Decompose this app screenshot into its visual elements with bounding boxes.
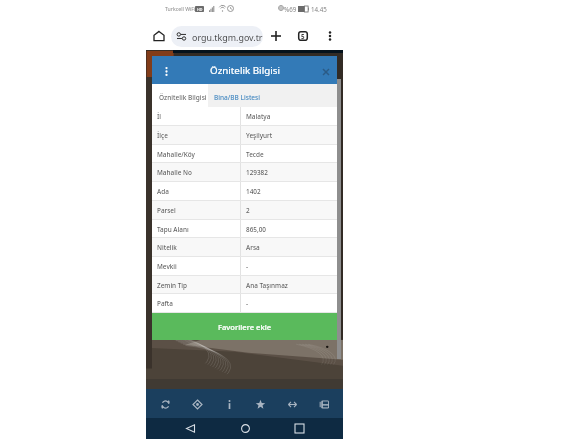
staticText: Nitelik xyxy=(157,243,177,252)
button[interactable]: Home xyxy=(149,26,169,46)
staticText: HD xyxy=(197,7,203,12)
button[interactable]: Bina/BB Listesi xyxy=(208,84,260,107)
staticText: Tecde xyxy=(246,150,264,159)
staticText: Ada xyxy=(157,187,169,196)
staticText: 2 xyxy=(246,206,250,215)
button[interactable]: Back xyxy=(179,418,201,439)
button[interactable]: Favorilere ekle xyxy=(152,313,337,340)
button[interactable]: Mahalle/Köy xyxy=(152,145,337,163)
button[interactable]: İl xyxy=(152,107,337,126)
button[interactable]: İlçe xyxy=(152,126,337,145)
staticText: İl xyxy=(157,112,161,121)
button[interactable]: Locate xyxy=(184,391,210,417)
staticText: Mahalle No xyxy=(157,168,192,177)
staticText: Pafta xyxy=(157,299,173,308)
button[interactable]: Measure xyxy=(279,391,305,417)
button[interactable]: Recents xyxy=(288,418,310,439)
button[interactable]: Mevkii xyxy=(152,257,337,276)
staticText: 14.45 xyxy=(311,5,327,13)
button[interactable]: Menu xyxy=(159,64,173,78)
button[interactable]: Info xyxy=(216,391,242,417)
button[interactable]: Favorite xyxy=(247,391,273,417)
staticText: 1402 xyxy=(246,187,261,196)
staticText: Ana Taşınmaz xyxy=(246,281,288,290)
staticText: 865,00 xyxy=(246,225,267,234)
button[interactable]: More options xyxy=(321,27,339,45)
button[interactable]: Refresh xyxy=(152,391,178,417)
button[interactable]: Print xyxy=(311,391,337,417)
button[interactable]: Close xyxy=(320,66,332,78)
button[interactable]: Tabs xyxy=(293,26,313,46)
button[interactable]: New tab xyxy=(266,26,286,46)
button[interactable]: orgu.tkgm.gov.tr xyxy=(171,26,263,47)
staticText: Mahalle/Köy xyxy=(157,150,195,159)
staticText: Malatya xyxy=(246,112,271,121)
staticText: %69 xyxy=(284,5,297,13)
button[interactable]: Mahalle No xyxy=(152,163,337,182)
staticText: 129382 xyxy=(246,168,268,177)
staticText: Tapu Alanı xyxy=(157,225,189,234)
staticText: 5 xyxy=(301,32,305,40)
button[interactable]: Öznitelik Bilgisi xyxy=(152,84,208,107)
staticText: Yeşilyurt xyxy=(246,131,273,140)
button[interactable]: Nitelik xyxy=(152,238,337,257)
button[interactable]: Parsel xyxy=(152,201,337,220)
staticText: Favorilere ekle xyxy=(218,322,272,332)
staticText: İlçe xyxy=(157,131,168,140)
staticText: Parsel xyxy=(157,206,176,215)
staticText: Mevkii xyxy=(157,262,177,271)
button[interactable]: Ada xyxy=(152,182,337,201)
button[interactable]: Home xyxy=(234,418,256,439)
staticText: Zemin Tip xyxy=(157,281,188,290)
staticText: - xyxy=(246,262,249,271)
staticText: - xyxy=(246,299,249,308)
staticText: Arsa xyxy=(246,243,260,252)
button[interactable]: Tapu Alanı xyxy=(152,220,337,238)
staticText: Turkcell WiFi xyxy=(165,5,196,12)
button[interactable]: Zemin Tip xyxy=(152,276,337,294)
staticText: Öznitelik Bilgisi xyxy=(210,64,280,77)
staticText: orgu.tkgm.gov.tr xyxy=(192,31,263,43)
staticText: Bina/BB Listesi xyxy=(214,93,261,102)
button[interactable]: Pafta xyxy=(152,294,337,313)
staticText: Öznitelik Bilgisi xyxy=(159,93,207,102)
